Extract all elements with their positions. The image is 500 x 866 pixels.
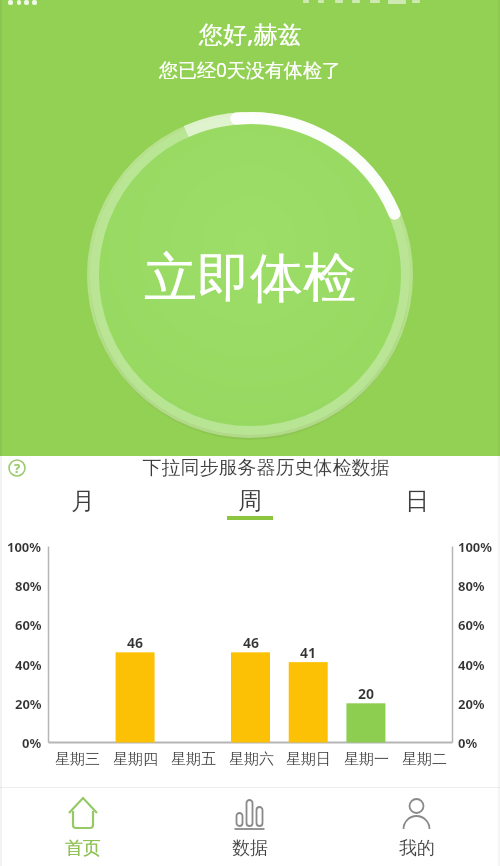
staticText: 您已经0天没有体检了 <box>159 57 341 83</box>
button[interactable]: 数据 <box>166 787 333 866</box>
staticText: 日 <box>405 486 429 516</box>
staticText: 100% <box>7 538 42 556</box>
staticText: 立即体检 <box>144 245 356 312</box>
staticText: 60% <box>458 616 485 634</box>
staticText: 0% <box>22 734 42 752</box>
staticText: 月 <box>71 486 95 516</box>
staticText: 您好,赫兹 <box>199 17 302 50</box>
staticText: 80% <box>458 577 485 595</box>
staticText: 100% <box>458 538 493 556</box>
staticText: 首页 <box>65 837 101 860</box>
button[interactable]: ? <box>8 459 26 477</box>
staticText: 46 <box>243 633 260 652</box>
staticText: ? <box>14 459 21 477</box>
staticText: 20% <box>458 695 485 713</box>
staticText: 20 <box>358 684 375 703</box>
staticText: 星期一 <box>344 750 389 769</box>
staticText: 20% <box>15 695 42 713</box>
staticText: 下拉同步服务器历史体检数据 <box>16 456 500 480</box>
button[interactable]: 立即体检 <box>87 112 413 438</box>
button[interactable]: 周 <box>166 486 333 516</box>
button[interactable]: 首页 <box>0 787 166 866</box>
button[interactable]: 日 <box>333 486 500 516</box>
staticText: 星期日 <box>286 750 331 769</box>
staticText: 40% <box>15 656 42 674</box>
staticText: 我的 <box>399 837 435 860</box>
button[interactable]: 我的 <box>333 787 500 866</box>
staticText: 星期三 <box>55 750 100 769</box>
staticText: 46 <box>127 633 144 652</box>
staticText: 数据 <box>232 837 268 860</box>
staticText: 星期二 <box>402 750 447 769</box>
staticText: 0% <box>458 734 478 752</box>
staticText: 星期四 <box>113 750 158 769</box>
staticText: 星期五 <box>171 750 216 769</box>
staticText: 星期六 <box>229 750 274 769</box>
staticText: 40% <box>458 656 485 674</box>
staticText: 60% <box>15 616 42 634</box>
button[interactable]: 月 <box>0 486 166 516</box>
staticText: 80% <box>15 577 42 595</box>
staticText: 周 <box>238 486 262 516</box>
staticText: 41 <box>300 643 317 662</box>
